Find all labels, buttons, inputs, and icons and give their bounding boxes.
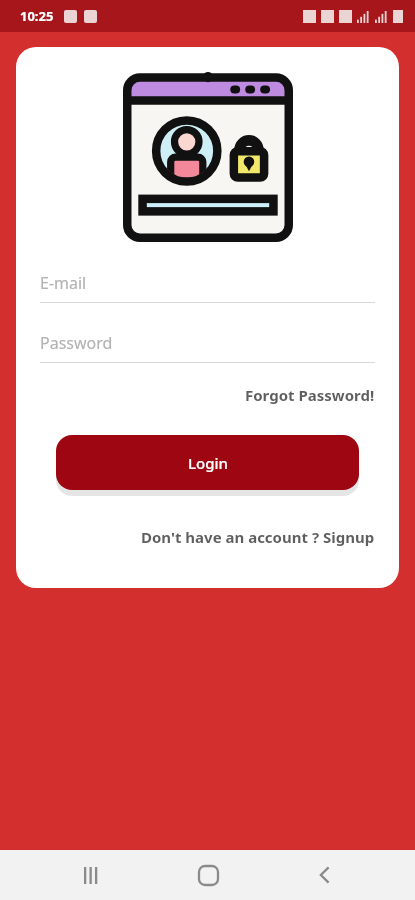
- staticText: 10:25: [20, 7, 54, 25]
- staticText: Don't have an account ? Signup: [141, 527, 375, 547]
- staticText: E-mail: [40, 272, 87, 294]
- button[interactable]: Recent apps: [62, 850, 118, 900]
- button[interactable]: Forgot Password!: [16, 381, 399, 409]
- staticText: Forgot Password!: [245, 385, 375, 405]
- button[interactable]: Home: [180, 850, 236, 900]
- button[interactable]: Back: [297, 850, 353, 900]
- staticText: Password: [40, 332, 113, 354]
- button[interactable]: Don't have an account ? Signup: [16, 523, 399, 551]
- staticText: Login: [188, 453, 228, 473]
- button[interactable]: Login: [56, 435, 359, 490]
